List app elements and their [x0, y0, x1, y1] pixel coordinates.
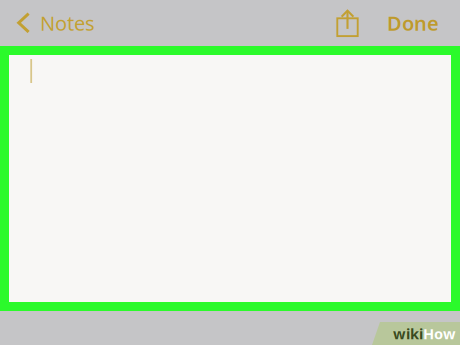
- staticText: Done: [387, 10, 439, 36]
- staticText: Notes: [40, 10, 95, 36]
- button[interactable]: Share: [310, 5, 375, 40]
- button[interactable]: Notes: [0, 3, 105, 43]
- button[interactable]: Note body: [0, 46, 460, 311]
- staticText: How: [423, 324, 456, 343]
- staticText: wiki: [393, 324, 423, 343]
- button[interactable]: Done: [375, 3, 439, 43]
